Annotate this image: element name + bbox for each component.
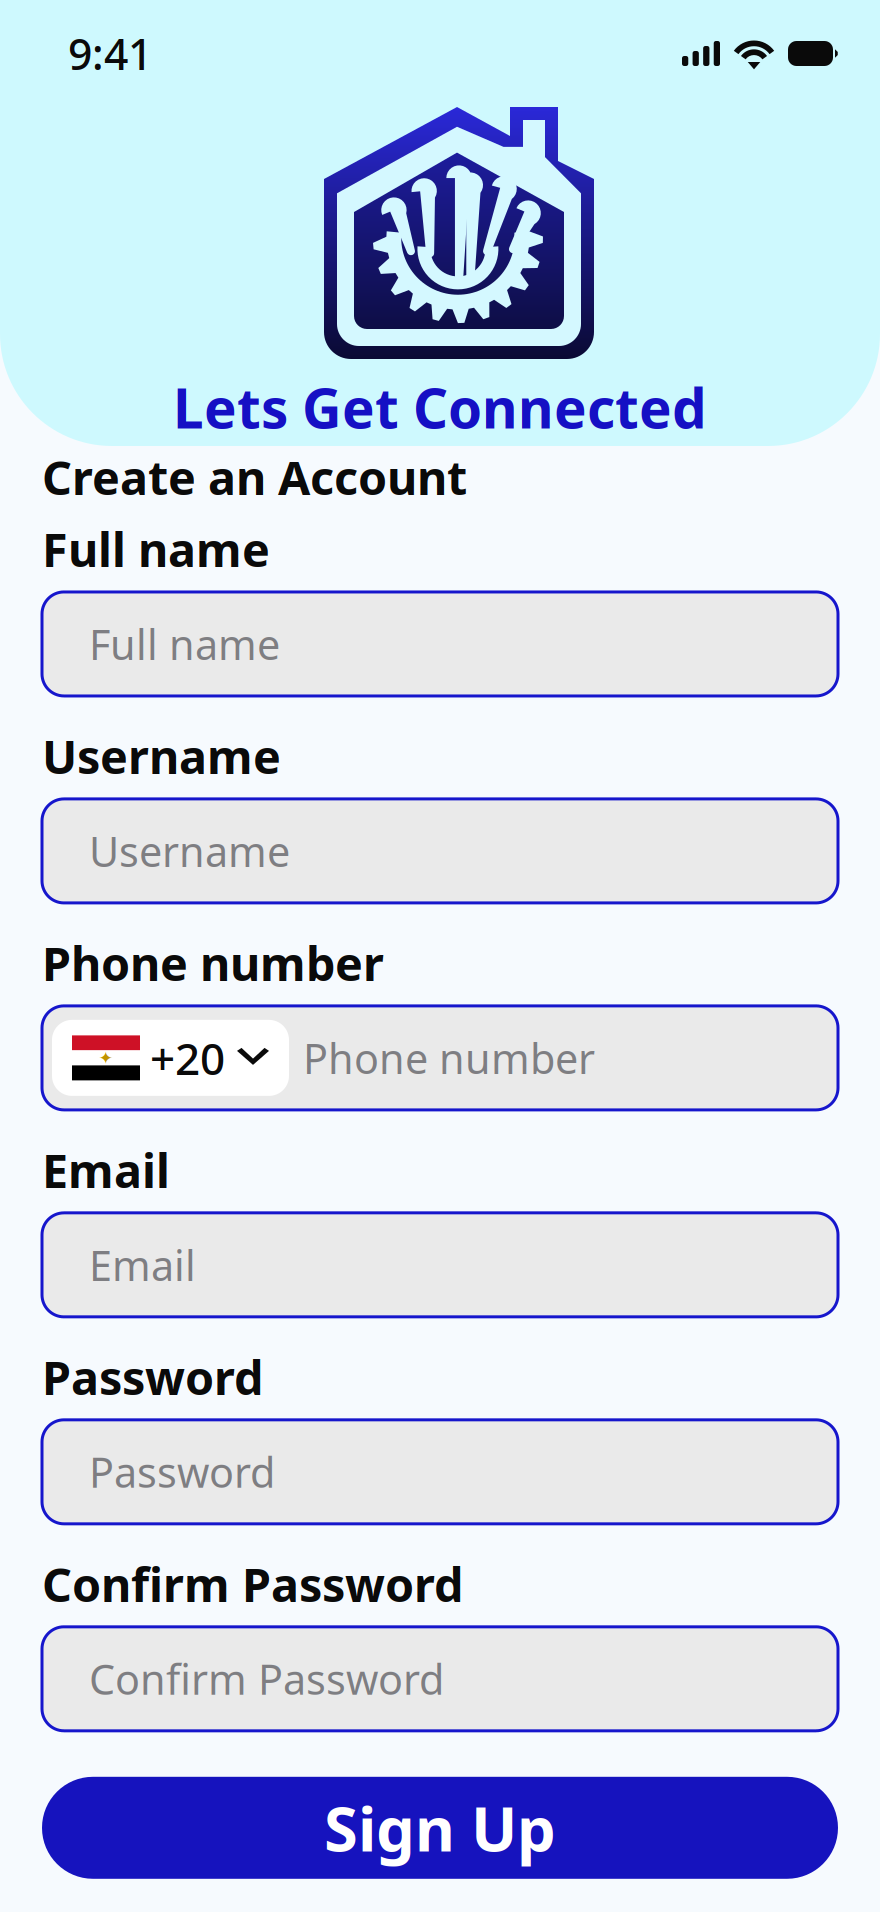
staticText: +20 [150,1029,225,1087]
staticText: Username [89,823,290,878]
staticText: Password [42,1346,263,1408]
staticText: Create an Account [42,446,467,508]
button[interactable]: Confirm Password [42,1627,838,1731]
staticText: Full name [89,616,280,671]
button[interactable]: ✦ [42,1006,838,1110]
staticText: Phone number [303,1030,595,1085]
button[interactable]: Username [42,799,838,903]
staticText: Sign Up [324,1787,556,1868]
staticText: Lets Get Connected [173,371,707,444]
staticText: Email [42,1139,170,1201]
button[interactable]: Sign Up [42,1777,838,1879]
staticText: Username [42,725,281,787]
staticText: Email [89,1237,196,1292]
staticText: Full name [42,518,270,580]
staticText: ✦ [98,1048,113,1068]
button[interactable]: Email [42,1213,838,1317]
button[interactable]: Password [42,1420,838,1524]
staticText: Password [89,1444,275,1499]
staticText: Confirm Password [89,1651,444,1706]
button[interactable]: Full name [42,592,838,696]
staticText: Phone number [42,932,384,994]
staticText: 9:41 [68,25,152,82]
staticText: Confirm Password [42,1553,463,1615]
